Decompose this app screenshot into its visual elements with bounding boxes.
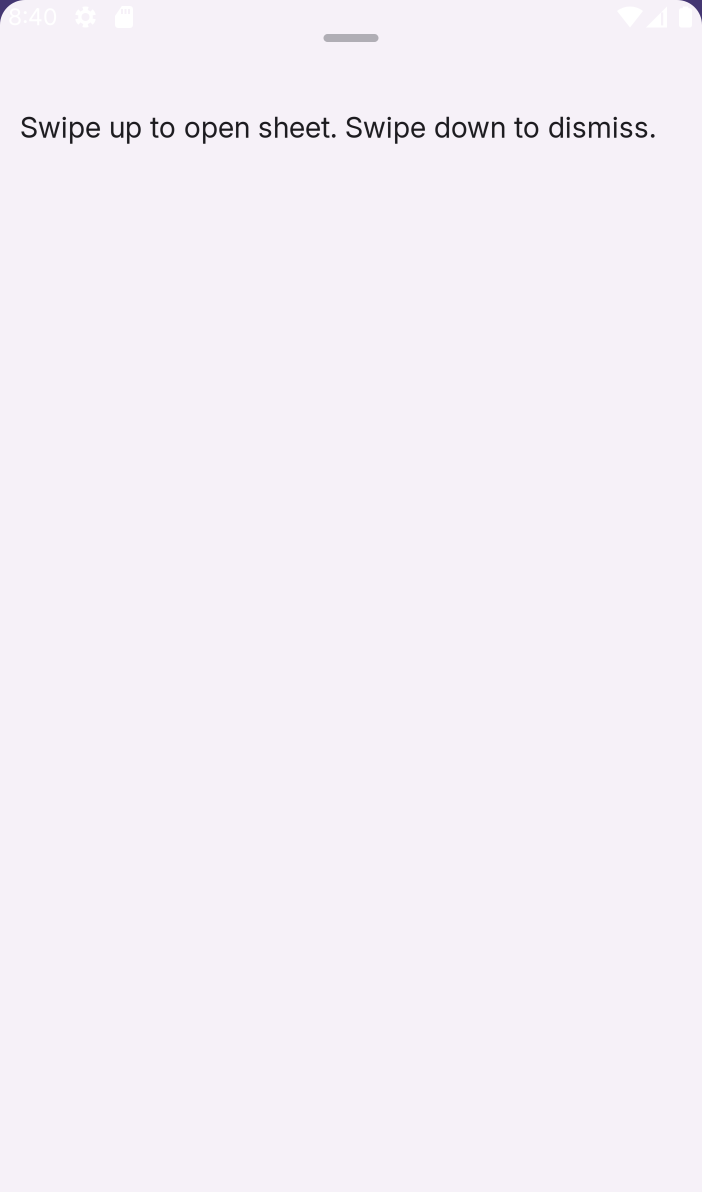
staticText: Swipe up to open sheet. Swipe down to di… — [20, 110, 656, 145]
staticText: 8:40 — [8, 3, 57, 31]
button[interactable]: Resize sheet — [283, 21, 418, 55]
